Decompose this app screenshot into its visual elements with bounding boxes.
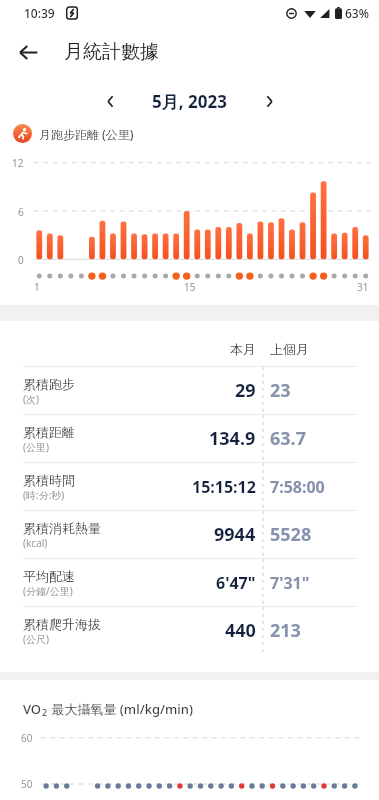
staticText: 60 xyxy=(21,731,33,745)
staticText: 累積時間 xyxy=(23,472,75,488)
staticText: 本月 xyxy=(230,341,256,357)
button[interactable]: 累積距離 xyxy=(23,415,356,462)
staticText: 213 xyxy=(270,618,301,643)
button[interactable]: 累積時間 xyxy=(23,463,356,510)
staticText: 累積距離 xyxy=(23,424,75,440)
staticText: 累積消耗熱量 xyxy=(23,520,101,536)
staticText: (公尺) xyxy=(23,632,49,646)
staticText: 平均配速 xyxy=(23,568,75,584)
staticText: 月統計數據 xyxy=(64,40,159,64)
staticText: 1 xyxy=(34,280,40,294)
staticText: 上個月 xyxy=(270,341,309,357)
staticText: 15 xyxy=(184,280,196,294)
button[interactable]: Back xyxy=(6,30,50,74)
staticText: 7'31" xyxy=(270,572,310,594)
staticText: (次) xyxy=(23,392,39,406)
staticText: 23 xyxy=(270,378,291,403)
button[interactable]: 累積跑步 xyxy=(23,367,356,414)
button[interactable]: Next month xyxy=(251,83,287,119)
staticText: 15:15:12 xyxy=(192,476,256,498)
staticText: 7:58:00 xyxy=(270,476,325,498)
staticText: 63% xyxy=(345,5,369,21)
button[interactable]: 累積爬升海拔 xyxy=(23,607,356,654)
staticText: 440 xyxy=(225,618,256,643)
staticText: (時:分:秒) xyxy=(23,488,65,502)
staticText: 134.9 xyxy=(209,426,256,451)
staticText: VO xyxy=(23,700,42,718)
staticText: 6 xyxy=(18,205,24,219)
staticText: 5月, 2023 xyxy=(152,90,227,113)
staticText: 2 xyxy=(42,706,48,718)
staticText: (公里) xyxy=(23,440,49,454)
staticText: 累積爬升海拔 xyxy=(23,616,101,632)
staticText: 6'47" xyxy=(216,572,256,594)
staticText: 0 xyxy=(18,253,24,267)
staticText: 最大攝氧量 (ml/kg/min) xyxy=(48,700,194,718)
staticText: 63.7 xyxy=(270,426,306,451)
staticText: (kcal) xyxy=(23,536,48,550)
button[interactable]: 平均配速 xyxy=(23,559,356,606)
staticText: 29 xyxy=(235,378,256,403)
staticText: 31 xyxy=(357,280,369,294)
button[interactable]: Previous month xyxy=(92,83,128,119)
staticText: 9944 xyxy=(214,522,256,547)
staticText: (分鐘/公里) xyxy=(23,584,73,598)
staticText: 5528 xyxy=(270,522,312,547)
staticText: 月跑步距離 (公里) xyxy=(39,126,134,142)
button[interactable]: 累積消耗熱量 xyxy=(23,511,356,558)
staticText: 10:39 xyxy=(24,5,55,21)
staticText: 累積跑步 xyxy=(23,376,75,392)
staticText: 50 xyxy=(21,777,33,791)
staticText: 12 xyxy=(12,156,24,170)
